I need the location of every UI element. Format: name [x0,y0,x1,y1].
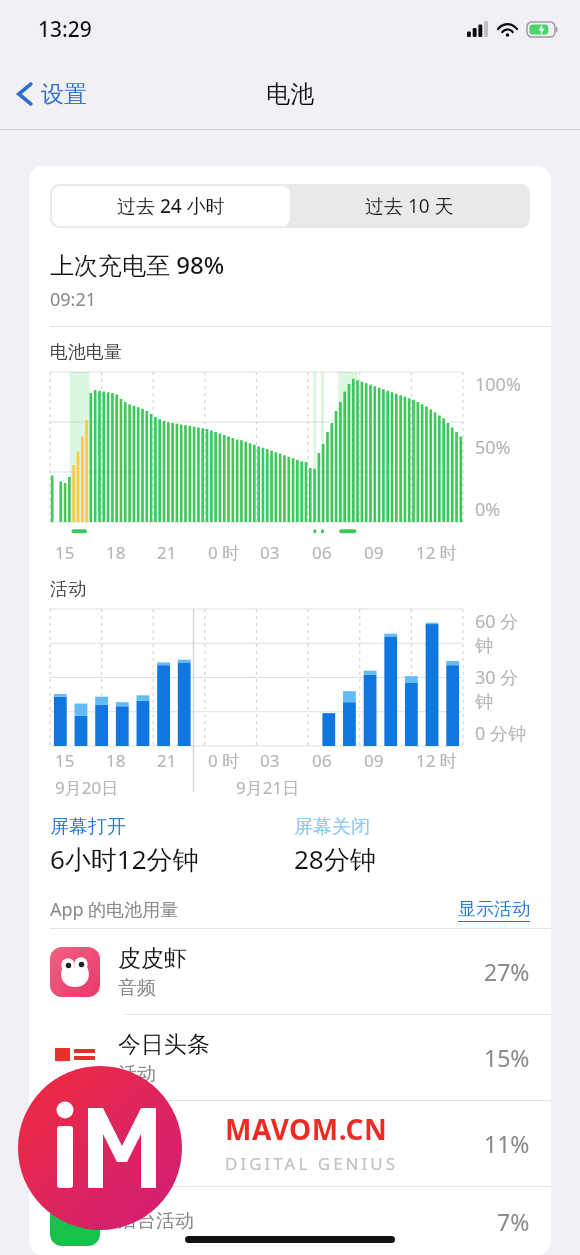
staticText: 15 [55,749,75,772]
staticText: 7% [497,1206,530,1237]
button[interactable]: 今日头条 [29,1015,551,1100]
staticText: 12 时 [416,541,457,564]
staticText: 21 [157,541,177,564]
staticText: 09 [364,541,384,564]
staticText: 电池电量 [50,341,122,364]
staticText: 12 时 [416,749,457,772]
staticText: 皮皮虾 [118,944,187,973]
staticText: 15% [484,1042,530,1073]
staticText: 100% [475,372,521,397]
staticText: 设置 [41,80,87,109]
staticText: 9月21日 [236,776,300,799]
staticText: 上次充电至 98% [50,248,225,281]
staticText: 9月20日 [55,776,119,799]
staticText: DIGITAL GENIUS [225,1152,399,1175]
staticText: 屏幕打开 [50,815,126,839]
staticText: 显示活动 [458,898,530,921]
staticText: 03 [260,749,280,772]
staticText: 18 [106,541,126,564]
staticText: 音频 [118,976,156,1000]
staticText: 09:21 [50,287,97,312]
staticText: MAVOM.CN [225,1110,388,1148]
staticText: 电池 [266,79,314,109]
staticText: 21 [157,749,177,772]
staticText: 06 [312,541,332,564]
staticText: 28分钟 [294,841,376,877]
button[interactable]: 过去 10 天 [290,186,528,226]
staticText: 50% [475,435,511,460]
staticText: 屏幕关闭 [294,815,370,839]
button[interactable]: 11% [29,1101,551,1186]
staticText: 0 时 [208,749,240,772]
button[interactable]: 设置 [0,73,97,115]
staticText: 0% [475,497,501,522]
button[interactable]: 过去 24 小时 [52,186,290,226]
staticText: 18 [106,749,126,772]
button[interactable]: 皮皮虾 [29,929,551,1014]
staticText: 0 分钟 [475,721,526,746]
staticText: 今日头条 [118,1030,210,1059]
staticText: 30 分钟 [475,665,533,713]
staticText: 60 分钟 [475,609,533,657]
staticText: 15 [55,541,75,564]
staticText: 活动 [50,578,86,601]
staticText: 13:29 [38,15,92,44]
button[interactable]: 后台活动 [29,1187,551,1255]
staticText: 27% [484,956,530,987]
staticText: 11% [484,1128,530,1159]
staticText: 06 [312,749,332,772]
staticText: 0 时 [208,541,240,564]
staticText: 活动 [118,1062,156,1086]
button[interactable]: 显示活动 [458,898,530,922]
staticText: 09 [364,749,384,772]
staticText: 后台活动 [118,1209,194,1233]
staticText: 03 [260,541,280,564]
staticText: 过去 10 天 [365,193,454,219]
staticText: App 的电池用量 [50,897,458,922]
staticText: 6小时12分钟 [50,841,199,877]
staticText: 过去 24 小时 [117,193,225,219]
